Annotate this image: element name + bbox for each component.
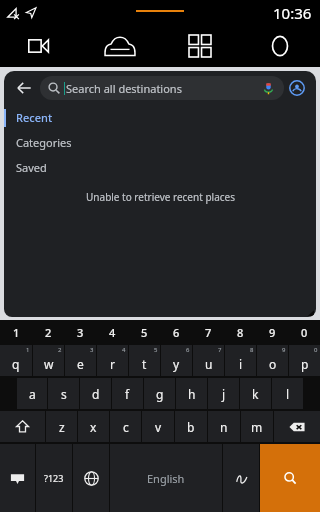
staticText: Categories bbox=[16, 135, 72, 150]
button[interactable]: h bbox=[176, 378, 207, 409]
staticText: o bbox=[269, 356, 277, 372]
staticText: 5 bbox=[141, 325, 148, 340]
button[interactable]: 2 bbox=[32, 320, 64, 344]
button[interactable]: 2 bbox=[33, 345, 64, 376]
button[interactable]: a bbox=[17, 378, 47, 409]
button[interactable]: l bbox=[272, 378, 303, 409]
staticText: 1 bbox=[13, 325, 20, 340]
staticText: r bbox=[110, 356, 115, 372]
staticText: 10:36 bbox=[273, 3, 312, 23]
button[interactable]: x bbox=[78, 411, 109, 442]
button[interactable]: Search all destinations bbox=[40, 76, 284, 100]
staticText: e bbox=[77, 356, 84, 372]
staticText: 7 bbox=[205, 325, 212, 340]
staticText: c bbox=[123, 419, 129, 435]
staticText: Recent bbox=[16, 110, 53, 125]
button[interactable]: 9 bbox=[257, 345, 288, 376]
button[interactable]: s bbox=[48, 378, 79, 409]
staticText: 9 bbox=[282, 346, 286, 354]
button[interactable]: 5 bbox=[129, 345, 160, 376]
button[interactable]: d bbox=[80, 378, 111, 409]
staticText: i bbox=[239, 356, 243, 372]
staticText: y bbox=[173, 356, 180, 372]
button[interactable]: c bbox=[110, 411, 141, 442]
button[interactable]: Voice search bbox=[260, 80, 276, 96]
button[interactable]: k bbox=[240, 378, 271, 409]
staticText: Search all destinations bbox=[66, 81, 182, 96]
staticText: b bbox=[187, 419, 195, 435]
staticText: p bbox=[301, 356, 309, 372]
button[interactable]: f bbox=[112, 378, 143, 409]
staticText: g bbox=[156, 386, 164, 402]
staticText: 4 bbox=[109, 325, 116, 340]
button[interactable]: Assistant bbox=[240, 25, 320, 67]
button[interactable]: 3 bbox=[65, 345, 96, 376]
button[interactable]: Car bbox=[80, 25, 160, 67]
button[interactable]: ?123 bbox=[36, 444, 72, 512]
button[interactable]: English bbox=[110, 444, 222, 512]
button[interactable]: 9 bbox=[256, 320, 288, 344]
staticText: s bbox=[61, 386, 67, 402]
staticText: 7 bbox=[218, 346, 222, 354]
staticText: 4 bbox=[122, 346, 126, 354]
staticText: ?123 bbox=[44, 472, 64, 484]
staticText: 0 bbox=[301, 325, 308, 340]
staticText: 3 bbox=[90, 346, 94, 354]
button[interactable]: Saved bbox=[4, 155, 316, 180]
button[interactable]: Change language bbox=[73, 444, 109, 512]
staticText: l bbox=[286, 386, 290, 402]
button[interactable]: Search bbox=[260, 444, 320, 512]
button[interactable]: Keyboard settings bbox=[0, 444, 35, 512]
button[interactable]: 0 bbox=[288, 320, 320, 344]
staticText: f bbox=[125, 386, 130, 402]
button[interactable]: Recent bbox=[4, 105, 316, 130]
button[interactable]: 1 bbox=[0, 320, 32, 344]
staticText: Saved bbox=[16, 160, 47, 175]
button[interactable]: Media bbox=[0, 25, 80, 67]
button[interactable]: Backspace bbox=[274, 411, 320, 442]
staticText: q bbox=[12, 356, 20, 372]
button[interactable]: 5 bbox=[128, 320, 160, 344]
staticText: 2 bbox=[58, 346, 62, 354]
button[interactable]: Categories bbox=[4, 130, 316, 155]
staticText: 2 bbox=[45, 325, 52, 340]
button[interactable]: 6 bbox=[160, 320, 192, 344]
button[interactable]: 1 bbox=[0, 345, 32, 376]
button[interactable]: Back bbox=[10, 74, 38, 102]
staticText: 6 bbox=[173, 325, 180, 340]
button[interactable]: z bbox=[46, 411, 77, 442]
button[interactable]: Apps bbox=[160, 25, 240, 67]
button[interactable]: 3 bbox=[64, 320, 96, 344]
button[interactable]: 7 bbox=[192, 320, 224, 344]
staticText: 1 bbox=[26, 346, 30, 354]
button[interactable]: 8 bbox=[224, 320, 256, 344]
button[interactable]: 4 bbox=[97, 345, 128, 376]
staticText: 5 bbox=[154, 346, 158, 354]
button[interactable]: Shift bbox=[0, 411, 45, 442]
button[interactable]: m bbox=[241, 411, 273, 442]
button[interactable]: b bbox=[175, 411, 207, 442]
button[interactable]: 0 bbox=[289, 345, 320, 376]
button[interactable]: g bbox=[144, 378, 175, 409]
button[interactable]: j bbox=[208, 378, 239, 409]
button[interactable]: 6 bbox=[161, 345, 192, 376]
button[interactable]: 8 bbox=[225, 345, 256, 376]
staticText: d bbox=[92, 386, 100, 402]
staticText: m bbox=[251, 419, 263, 435]
staticText: w bbox=[44, 356, 54, 372]
button[interactable]: Handwriting bbox=[223, 444, 259, 512]
staticText: 9 bbox=[269, 325, 276, 340]
staticText: 8 bbox=[237, 325, 244, 340]
button[interactable]: Account bbox=[284, 75, 310, 101]
staticText: t bbox=[142, 356, 147, 372]
staticText: v bbox=[155, 419, 162, 435]
staticText: j bbox=[222, 386, 226, 402]
staticText: Unable to retrieve recent places bbox=[86, 190, 235, 204]
button[interactable]: n bbox=[208, 411, 240, 442]
button[interactable]: v bbox=[142, 411, 174, 442]
staticText: 0 bbox=[314, 346, 318, 354]
button[interactable]: 7 bbox=[193, 345, 224, 376]
staticText: 3 bbox=[77, 325, 84, 340]
staticText: x bbox=[90, 419, 97, 435]
button[interactable]: 4 bbox=[96, 320, 128, 344]
